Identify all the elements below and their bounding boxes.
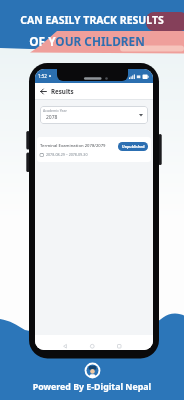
button[interactable]: Terminal Examination 2078/2079 <box>37 137 151 162</box>
staticText: Academic Year <box>43 108 67 113</box>
staticText: Terminal Examination 2078/2079 <box>40 143 118 149</box>
staticText: CAN EASILY TRACK RESULTS <box>0 13 184 27</box>
button[interactable] <box>117 344 122 349</box>
button[interactable] <box>63 344 68 349</box>
button[interactable] <box>90 344 95 349</box>
staticText: Results <box>51 87 74 95</box>
staticText: 2078 <box>46 114 58 121</box>
button[interactable]: Unpublished <box>118 142 148 151</box>
button[interactable] <box>35 83 51 99</box>
staticText: OF YOUR CHILDREN <box>0 33 179 49</box>
staticText: 1:52 <box>38 73 47 79</box>
button[interactable]: Powered By E-Digital Nepal <box>0 381 184 393</box>
button[interactable]: Academic Year <box>40 106 148 124</box>
staticText: Unpublished <box>122 144 145 149</box>
staticText: 2078-08-29 ~ 2078-09-30 <box>46 152 88 157</box>
